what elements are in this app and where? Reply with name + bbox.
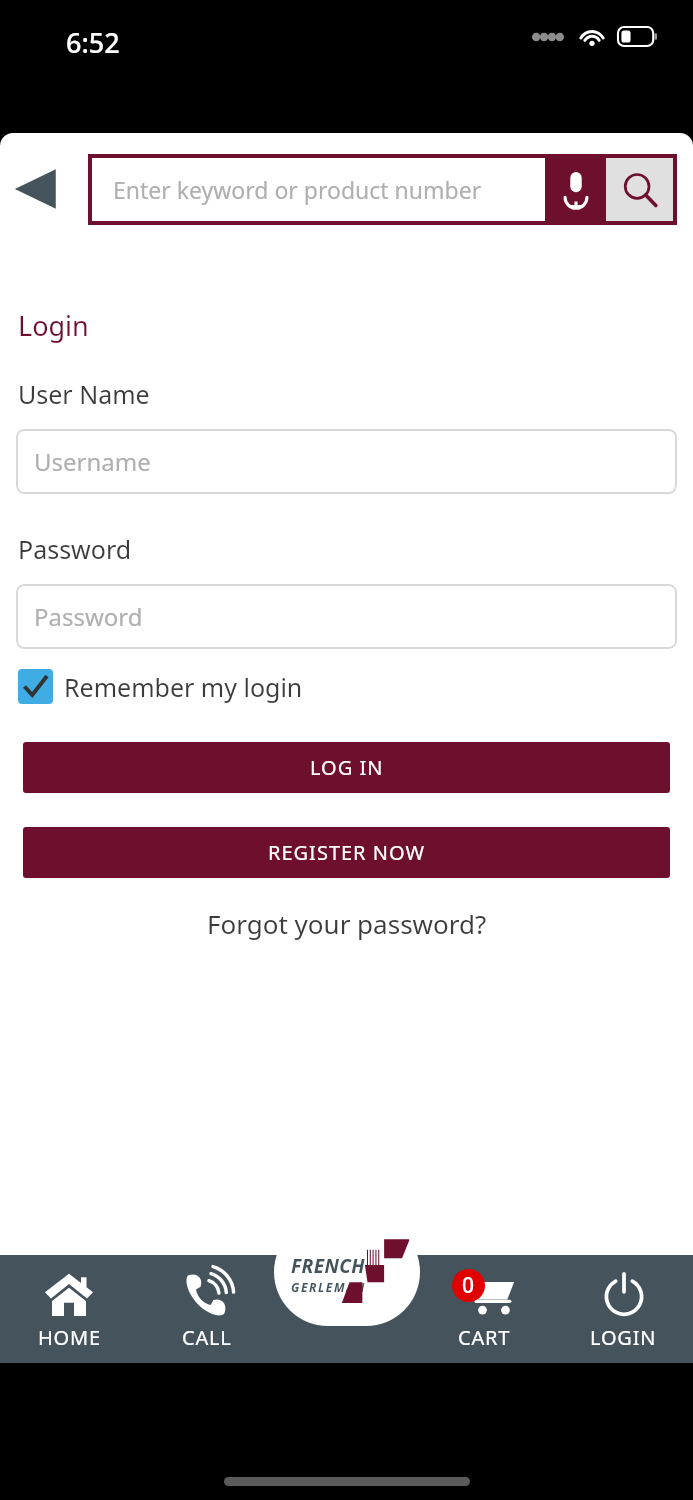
staticText: 6:52 — [66, 24, 120, 61]
button[interactable]: Call — [138, 1255, 276, 1363]
staticText: User Name — [18, 377, 150, 411]
staticText: REGISTER NOW — [268, 839, 425, 866]
button[interactable]: Enter keyword or product number — [92, 158, 545, 221]
staticText: 0 — [462, 1271, 475, 1300]
button[interactable]: Forgot your password? — [0, 906, 693, 941]
button[interactable]: REGISTER NOW — [23, 827, 670, 878]
staticText: LOG IN — [310, 754, 384, 781]
button[interactable]: Home — [0, 1255, 138, 1363]
button[interactable]: Password — [16, 584, 677, 649]
staticText: Password — [34, 600, 143, 633]
staticText: CALL — [182, 1324, 232, 1351]
staticText: Remember my login — [64, 670, 303, 704]
staticText: FRENCH — [291, 1253, 365, 1279]
staticText: LOGIN — [590, 1324, 657, 1351]
staticText: GERLEMAN — [291, 1279, 366, 1295]
button[interactable]: Back — [6, 159, 66, 219]
button[interactable]: Remember my login — [18, 669, 303, 704]
staticText: HOME — [38, 1324, 101, 1351]
staticText: Enter keyword or product number — [113, 174, 482, 205]
staticText: Forgot your password? — [207, 906, 487, 941]
button[interactable]: LOG IN — [23, 742, 670, 793]
staticText: Username — [34, 445, 151, 478]
staticText: Password — [18, 532, 132, 566]
staticText: CART — [458, 1324, 511, 1351]
button[interactable]: Cart — [415, 1255, 554, 1363]
staticText: Login — [18, 307, 89, 344]
button[interactable]: Search — [606, 158, 673, 221]
button[interactable]: French Gerleman home — [274, 1218, 420, 1326]
button[interactable]: Voice search — [545, 158, 606, 221]
button[interactable]: Username — [16, 429, 677, 494]
button[interactable]: Login — [554, 1255, 693, 1363]
